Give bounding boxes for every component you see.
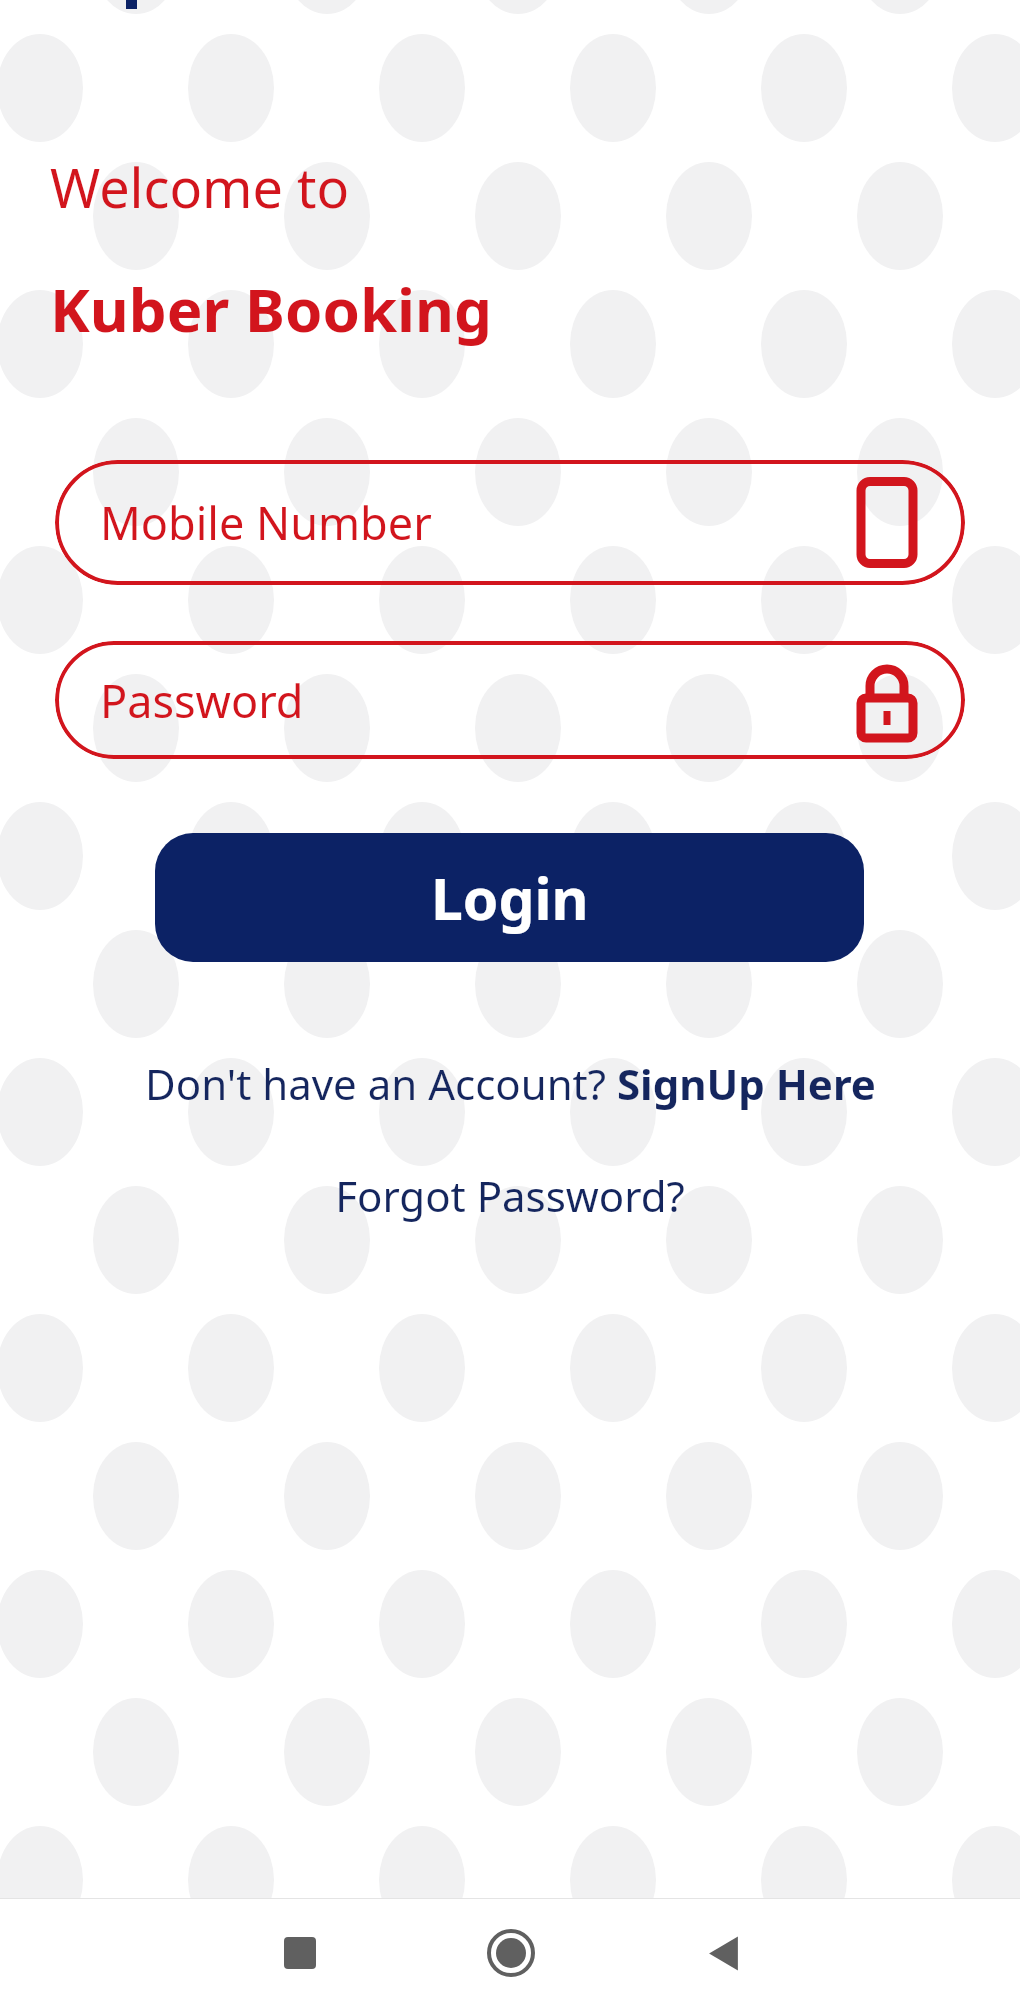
button[interactable]: Home: [487, 1929, 535, 1977]
button[interactable]: Back: [701, 1931, 746, 1976]
button[interactable]: Mobile Number: [55, 460, 965, 585]
button[interactable]: Login: [155, 833, 864, 962]
button[interactable]: Forgot Password?: [0, 1152, 1020, 1238]
button[interactable]: Recent apps: [284, 1937, 316, 1969]
staticText: Forgot Password?: [335, 1167, 685, 1224]
staticText: Login: [431, 859, 589, 937]
staticText: Mobile Number: [100, 492, 432, 553]
button[interactable]: Don't have an Account? SignUp Here: [0, 1040, 1020, 1126]
staticText: Don't have an Account? SignUp Here: [145, 1055, 876, 1112]
staticText: Welcome to: [50, 150, 350, 224]
staticText: Password: [100, 670, 304, 731]
button[interactable]: Password: [55, 641, 965, 759]
staticText: Kuber Booking: [50, 268, 492, 350]
